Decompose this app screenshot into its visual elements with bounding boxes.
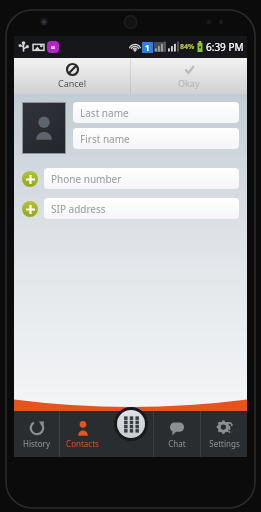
button[interactable]: Add SIP address	[22, 201, 38, 217]
button[interactable]: Okay	[131, 58, 247, 94]
staticText: Contacts	[66, 438, 99, 449]
staticText: First name	[80, 132, 130, 146]
button[interactable]: First name	[73, 128, 239, 149]
button[interactable]: Chat	[154, 411, 200, 457]
staticText: SIP address	[51, 202, 106, 216]
button[interactable]: Contacts	[60, 411, 105, 457]
staticText: Okay	[178, 77, 200, 89]
button[interactable]: Cancel	[14, 58, 130, 94]
button[interactable]: SIP address	[44, 198, 239, 219]
staticText: 1	[145, 42, 150, 53]
button[interactable]: Add Phone number	[22, 171, 38, 187]
staticText: History	[23, 438, 50, 449]
button[interactable]: Last name	[73, 102, 239, 123]
button[interactable]: Settings	[201, 411, 247, 457]
staticText: Last name	[80, 106, 129, 120]
staticText: Cancel	[58, 77, 87, 89]
button[interactable]: Keypad	[117, 410, 145, 438]
staticText: 84%	[180, 42, 195, 52]
staticText: 6:39 PM	[206, 40, 244, 54]
button[interactable]: Contact photo	[23, 103, 65, 153]
staticText: Settings	[209, 438, 240, 449]
button[interactable]: History	[14, 411, 59, 457]
staticText: Phone number	[51, 172, 122, 186]
staticText: u	[51, 43, 55, 51]
staticText: Chat	[168, 438, 186, 449]
button[interactable]: Phone number	[44, 168, 239, 189]
